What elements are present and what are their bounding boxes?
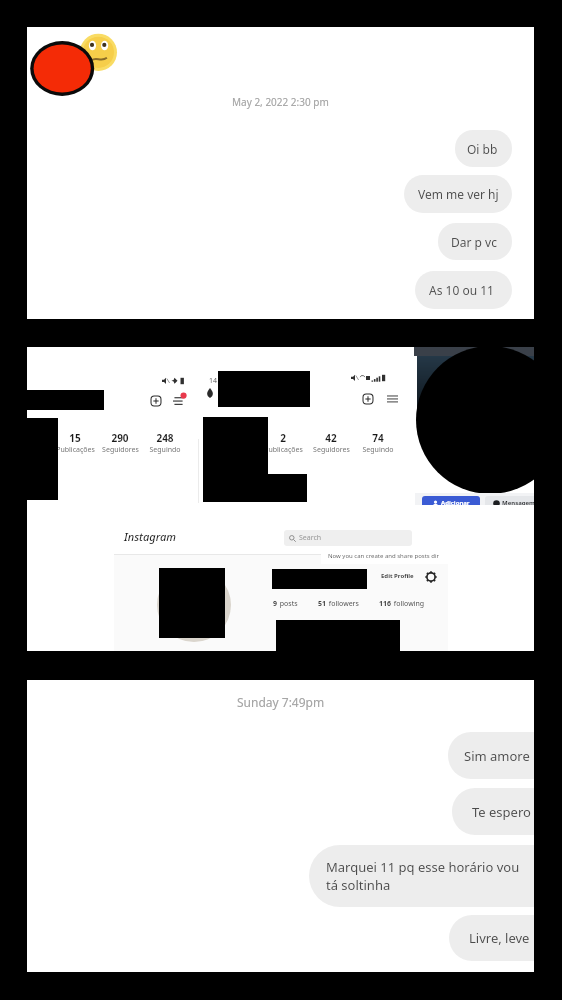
staticText: Marquei 11 pq esse horário vou [326, 858, 520, 876]
button[interactable]: Marquei 11 pq esse horário vou [309, 845, 534, 907]
staticText: Publicações [56, 445, 95, 455]
button[interactable]: Mensagem [485, 496, 534, 510]
staticText: 116 [379, 599, 392, 609]
staticText: Instagram [124, 529, 177, 544]
button[interactable]: Menu [173, 395, 185, 406]
other: Confused face emoji [25, 20, 135, 110]
staticText: 42 [325, 431, 337, 445]
button[interactable]: New post [362, 393, 374, 405]
staticText: May 2, 2022 2:30 pm [232, 95, 329, 109]
staticText: Seguidores [313, 445, 350, 455]
button[interactable]: 15 [30, 431, 120, 455]
staticText: Te espero [472, 803, 531, 821]
button[interactable]: Edit Profile [376, 570, 418, 582]
staticText: 290 [111, 431, 129, 445]
staticText: Dar p vc [451, 234, 497, 250]
button[interactable]: 290 [75, 431, 165, 455]
staticText: 74 [372, 431, 384, 445]
staticText: following [392, 599, 425, 609]
staticText: As 10 ou 11 [429, 282, 494, 298]
staticText: Sunday 7:49pm [237, 694, 325, 710]
button[interactable]: Vem me ver hj [404, 175, 512, 213]
button[interactable]: 248 [120, 431, 210, 455]
staticText: Seguindo [149, 445, 181, 455]
staticText: posts [278, 599, 298, 609]
staticText: Seguidores [102, 445, 139, 455]
staticText: Mensagem [502, 499, 534, 507]
button[interactable]: As 10 ou 11 [415, 271, 512, 309]
staticText: 9 [273, 599, 278, 609]
staticText: Vem me ver hj [418, 186, 499, 202]
staticText: Adicionar [441, 499, 470, 507]
staticText: Publicações [264, 445, 303, 455]
staticText: 2 [280, 431, 286, 445]
button[interactable]: Sim amore [448, 732, 534, 779]
button[interactable]: 74 [333, 431, 423, 455]
staticText: tá soltinha [326, 876, 391, 894]
staticText: Search [299, 533, 322, 543]
button[interactable]: Search [284, 530, 412, 546]
button[interactable]: 42 [286, 431, 376, 455]
staticText: 14 [209, 376, 218, 386]
staticText: 248 [156, 431, 174, 445]
staticText: Sim amore [464, 747, 530, 765]
staticText: 51 [318, 599, 327, 609]
staticText: 15 [69, 431, 81, 445]
button[interactable]: Livre, leve [449, 915, 534, 961]
button[interactable]: Te espero [452, 788, 534, 835]
staticText: Oi bb [467, 141, 498, 157]
button[interactable]: Dar p vc [438, 223, 512, 260]
button[interactable]: 2 [238, 431, 328, 455]
staticText: Now you can create and share posts dir [328, 552, 455, 560]
button[interactable]: New post [150, 395, 162, 407]
staticText: Edit Profile [381, 572, 414, 580]
button[interactable]: Settings [425, 571, 437, 583]
button[interactable]: Oi bb [455, 130, 512, 167]
button[interactable]: Adicionar [422, 496, 480, 510]
staticText: Livre, leve [469, 929, 530, 947]
button[interactable]: Menu [387, 394, 398, 403]
staticText: Seguindo [362, 445, 394, 455]
staticText: followers [327, 599, 359, 609]
